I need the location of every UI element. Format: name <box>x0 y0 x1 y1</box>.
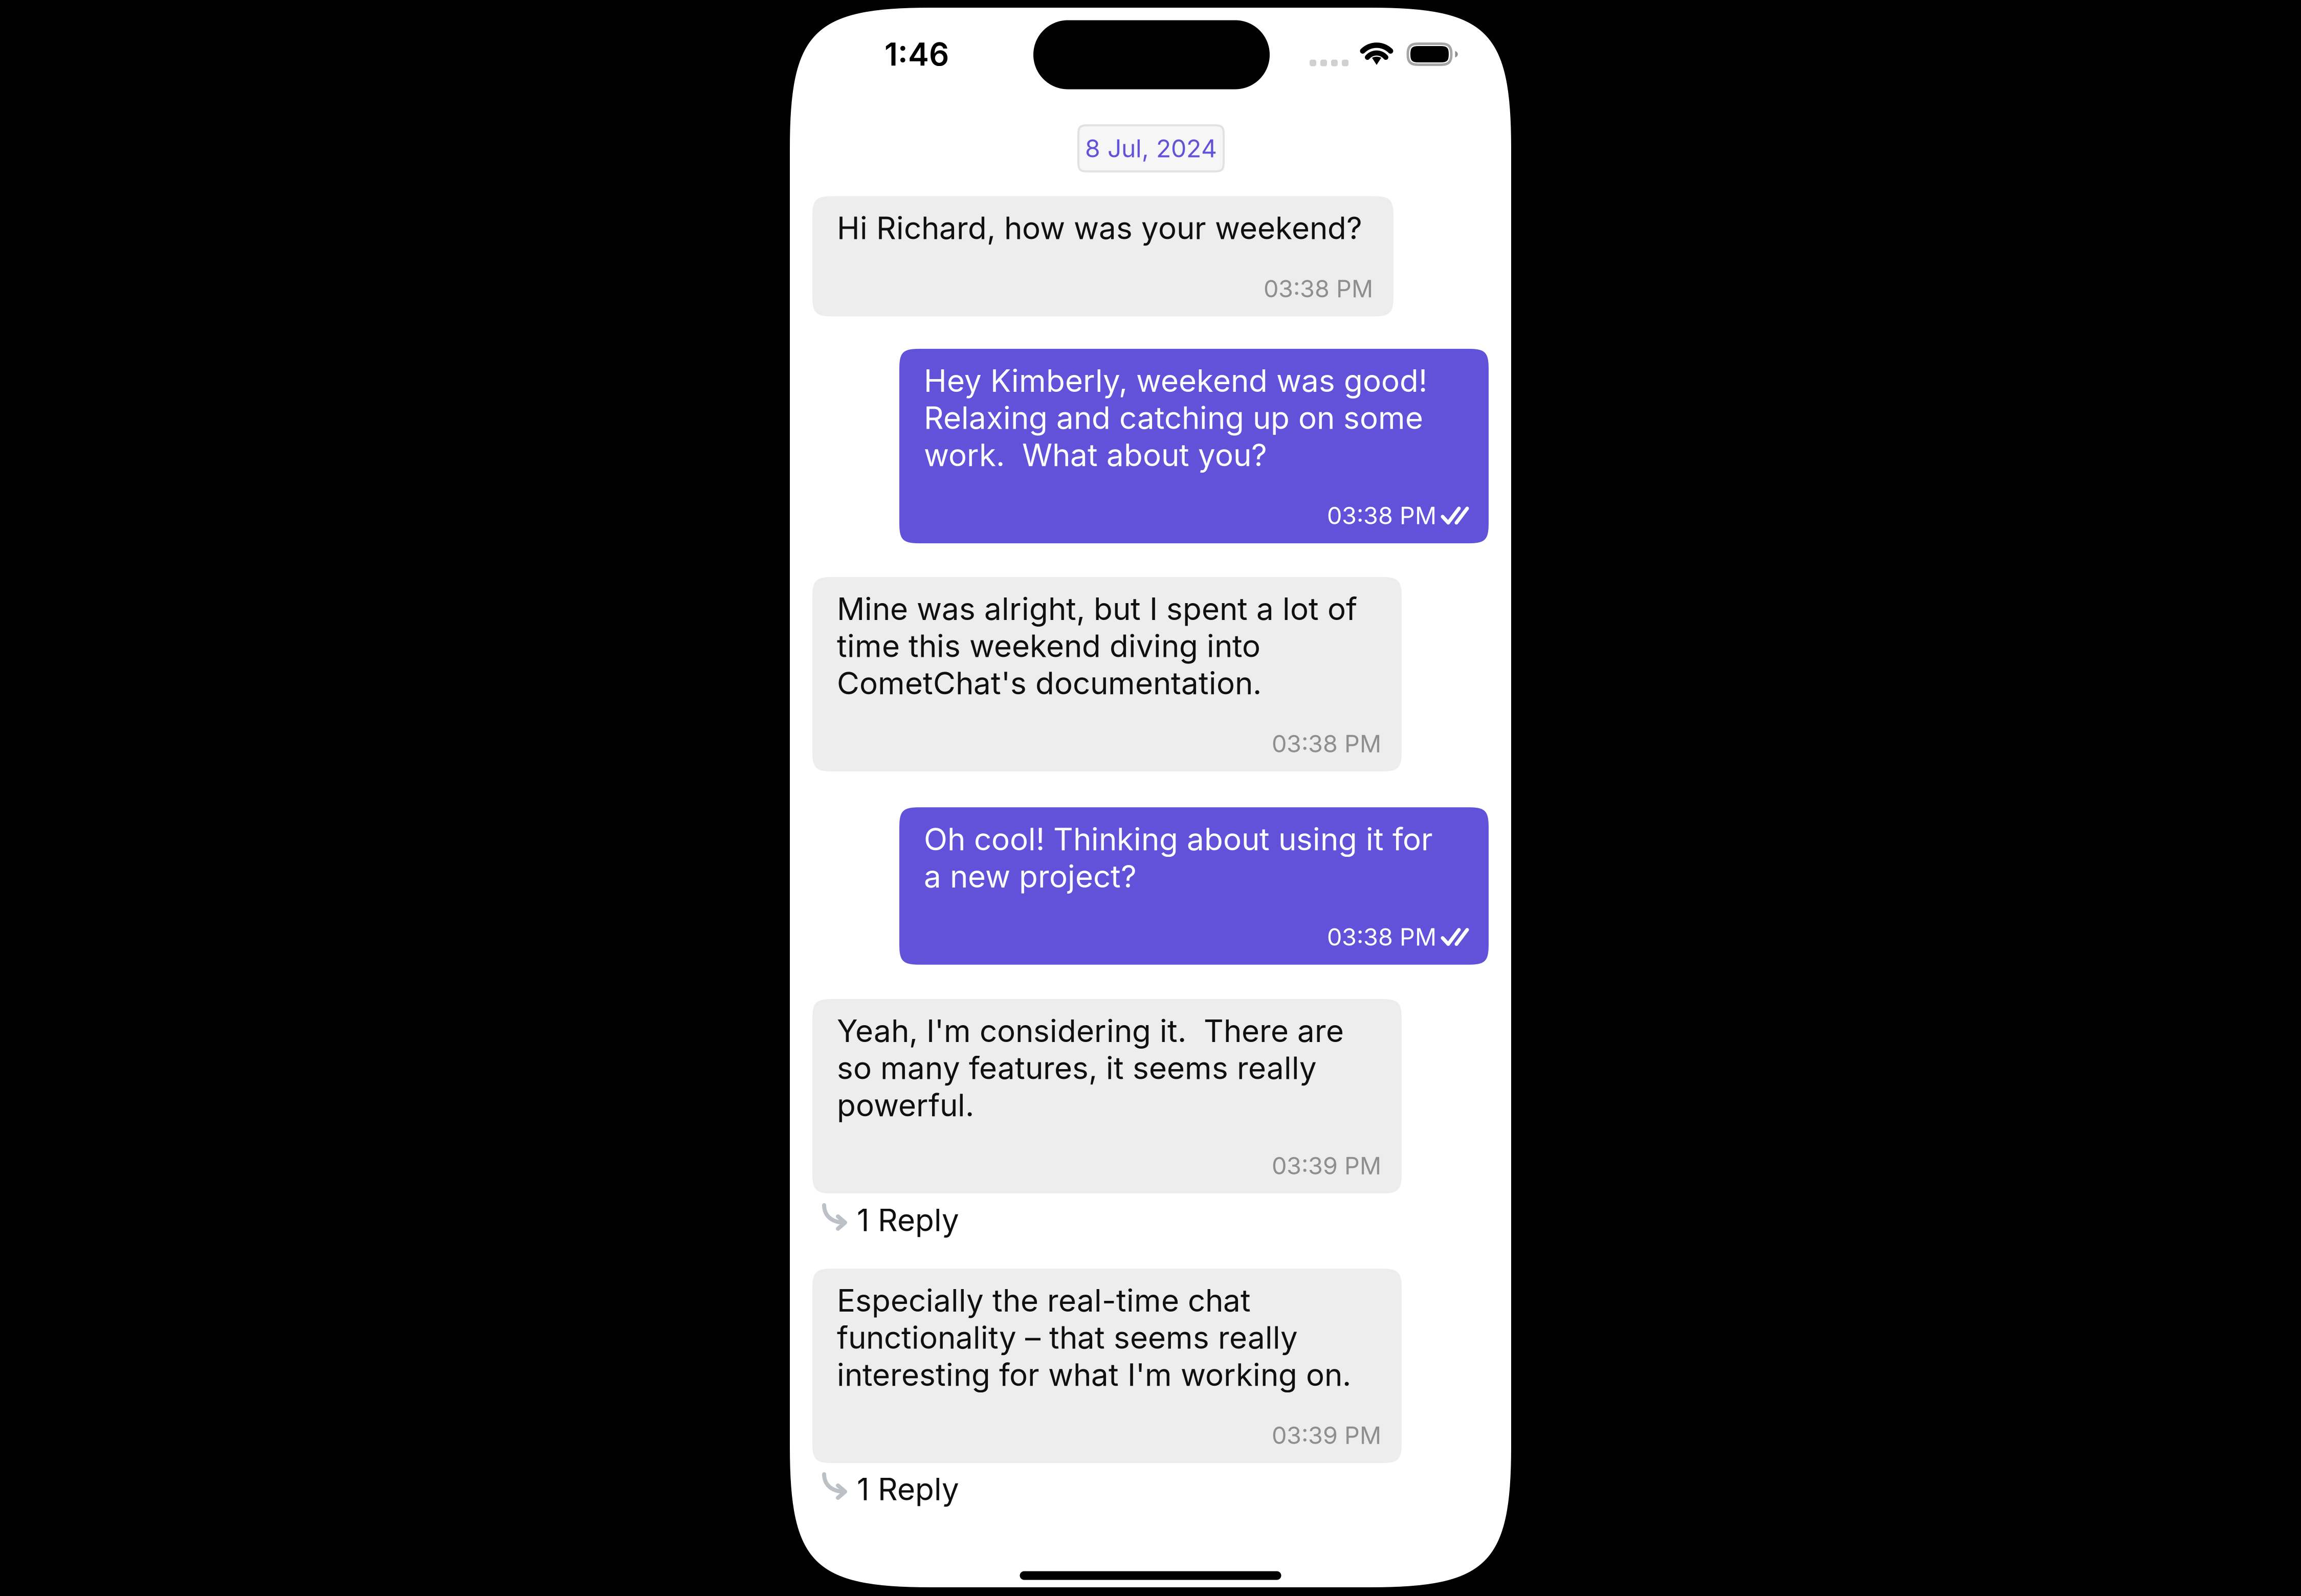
staticText: 8 Jul, 2024 <box>1085 134 1217 163</box>
staticText: 03:39 PM <box>1272 1151 1381 1180</box>
staticText: Oh cool! Thinking about using it for a n… <box>924 821 1433 895</box>
button[interactable]: Mine was alright, but I spent a lot of t… <box>812 577 1402 772</box>
button[interactable]: Oh cool! Thinking about using it for a n… <box>899 807 1489 965</box>
button[interactable]: 1 Reply <box>821 1471 1035 1508</box>
staticText: 1 Reply <box>857 1471 959 1508</box>
staticText: Especially the real-time chat functional… <box>837 1282 1351 1393</box>
staticText: 1:46 <box>884 35 949 73</box>
staticText: 1 Reply <box>857 1201 959 1239</box>
button[interactable]: Especially the real-time chat functional… <box>812 1269 1402 1463</box>
staticText: 03:38 PM <box>1327 501 1436 530</box>
button[interactable]: 1 Reply <box>821 1202 1035 1238</box>
staticText: Hey Kimberly, weekend was good! Relaxing… <box>924 362 1427 474</box>
staticText: 03:39 PM <box>1272 1421 1381 1450</box>
staticText: Mine was alright, but I spent a lot of t… <box>837 590 1357 702</box>
staticText: Yeah, I'm considering it. There are so m… <box>837 1012 1344 1124</box>
staticText: 03:38 PM <box>1327 923 1436 951</box>
button[interactable]: Hi Richard, how was your weekend? <box>812 196 1393 316</box>
staticText: 03:38 PM <box>1264 274 1373 303</box>
button[interactable]: Hey Kimberly, weekend was good! Relaxing… <box>899 349 1489 543</box>
staticText: 03:38 PM <box>1272 729 1381 758</box>
staticText: Hi Richard, how was your weekend? <box>837 209 1362 247</box>
button[interactable]: 8 Jul, 2024 <box>1078 125 1224 171</box>
button[interactable]: Yeah, I'm considering it. There are so m… <box>812 999 1402 1194</box>
